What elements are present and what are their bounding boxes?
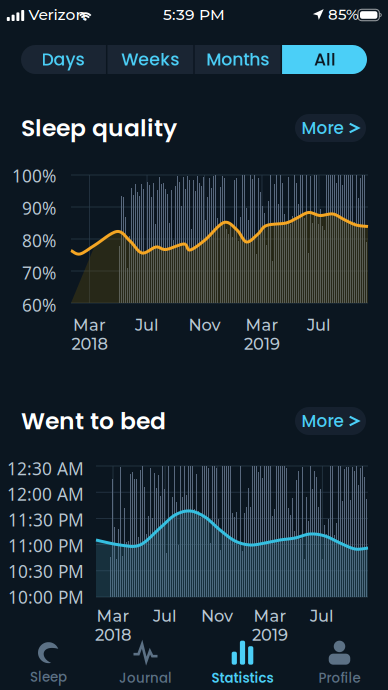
staticText: Profile [318, 669, 360, 687]
staticText: Days [42, 47, 85, 72]
staticText: 70% [22, 261, 56, 284]
staticText: 90% [22, 197, 56, 220]
button[interactable]: Sleep [0, 638, 97, 690]
staticText: 11:00 PM [8, 534, 84, 557]
staticText: 11:30 PM [8, 508, 84, 531]
button[interactable]: All [282, 45, 368, 74]
staticText: Months [206, 47, 269, 72]
staticText: Weeks [121, 47, 179, 72]
staticText: 2019 [252, 625, 288, 645]
staticText: 2018 [95, 625, 131, 645]
staticText: Mar [245, 315, 278, 335]
staticText: 60% [22, 293, 56, 316]
staticText: Mar [253, 606, 286, 626]
staticText: Jul [135, 315, 159, 335]
staticText: 10:30 PM [8, 560, 84, 583]
button[interactable]: Months [195, 45, 281, 74]
staticText: Sleep [30, 668, 67, 686]
staticText: More [301, 116, 343, 140]
staticText: 12:00 AM [7, 483, 84, 506]
staticText: 100% [12, 164, 56, 187]
staticText: 80% [22, 229, 56, 252]
staticText: 2019 [244, 334, 280, 354]
staticText: 10:00 PM [8, 585, 84, 608]
staticText: 5:39 PM [163, 5, 225, 24]
staticText: Went to bed [21, 405, 166, 437]
staticText: Verizon [28, 5, 86, 24]
staticText: Jul [307, 315, 331, 335]
button[interactable]: Weeks [107, 45, 193, 74]
staticText: All [314, 47, 336, 72]
staticText: More [301, 409, 343, 433]
button[interactable]: More [295, 114, 366, 142]
staticText: 85% [328, 5, 359, 24]
staticText: Mar [73, 315, 106, 335]
staticText: Nov [188, 315, 220, 335]
staticText: 2018 [71, 334, 107, 354]
staticText: Journal [119, 669, 172, 687]
button[interactable]: Profile [291, 638, 388, 690]
staticText: Jul [153, 606, 177, 626]
staticText: Mar [96, 606, 129, 626]
staticText: Sleep quality [21, 112, 177, 144]
button[interactable]: Journal [97, 638, 194, 690]
staticText: 12:30 AM [7, 457, 84, 480]
staticText: Jul [310, 606, 334, 626]
button[interactable]: Days [20, 45, 106, 74]
button[interactable]: Statistics [194, 638, 291, 690]
button[interactable]: More [295, 407, 366, 435]
staticText: Statistics [211, 669, 273, 687]
staticText: Nov [201, 606, 233, 626]
